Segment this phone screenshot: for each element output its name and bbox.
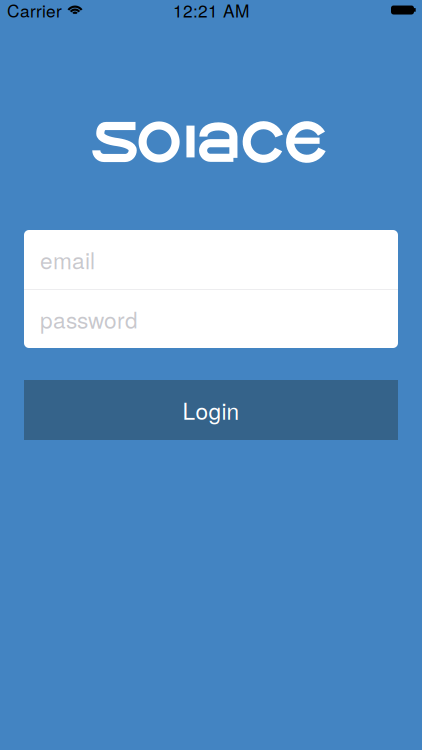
- staticText: 12:21 AM: [173, 0, 249, 22]
- button[interactable]: Login: [24, 380, 398, 440]
- staticText: Carrier: [7, 0, 62, 22]
- staticText: password: [40, 303, 138, 335]
- button[interactable]: password: [24, 290, 398, 348]
- button[interactable]: email: [24, 230, 398, 289]
- staticText: email: [40, 243, 95, 276]
- staticText: Login: [182, 394, 239, 426]
